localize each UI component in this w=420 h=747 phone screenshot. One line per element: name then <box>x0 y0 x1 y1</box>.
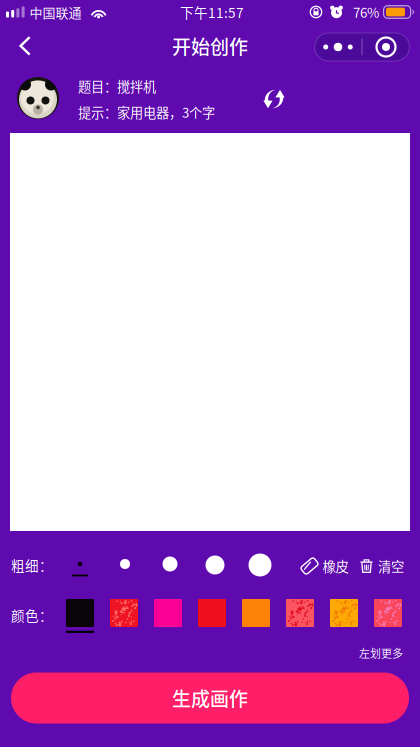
button[interactable]: 生成画作 <box>11 672 409 723</box>
staticText: 粗细： <box>11 555 53 575</box>
staticText: 清空 <box>378 556 404 576</box>
button[interactable]: 清空 <box>359 550 404 582</box>
staticText: 颜色： <box>11 605 53 625</box>
staticText: 左划更多 <box>359 645 403 661</box>
button[interactable]: 换一题 <box>252 77 296 121</box>
staticText: 题目：搅拌机 <box>78 76 156 95</box>
staticText: 开始创作 <box>172 32 248 60</box>
button[interactable]: 画笔颜色 <box>63 596 97 636</box>
button[interactable]: 画笔颜色 <box>151 596 185 636</box>
button[interactable]: 笔刷粗细 <box>152 547 188 581</box>
button[interactable]: 笔刷粗细 <box>197 548 233 582</box>
staticText: 生成画作 <box>172 684 248 712</box>
staticText: 下午11:57 <box>180 2 244 22</box>
button[interactable]: 笔刷粗细 <box>242 548 278 582</box>
button[interactable]: 画笔颜色 <box>239 596 273 636</box>
button[interactable]: 橡皮 <box>300 550 350 582</box>
button[interactable]: 画笔颜色 <box>371 596 405 636</box>
button[interactable]: 画笔颜色 <box>283 596 317 636</box>
staticText: 橡皮 <box>322 556 348 576</box>
button[interactable]: 画笔颜色 <box>327 596 361 636</box>
button[interactable]: 笔刷粗细 <box>62 547 98 581</box>
button[interactable]: 画笔颜色 <box>195 596 229 636</box>
button[interactable]: 更多功能 <box>314 33 409 61</box>
button[interactable]: 返回 <box>4 25 46 67</box>
staticText: 中国联通 <box>30 3 82 21</box>
button[interactable]: 画笔颜色 <box>107 596 141 636</box>
staticText: 76% <box>353 2 379 22</box>
button[interactable]: 笔刷粗细 <box>107 547 143 581</box>
staticText: 提示：家用电器，3个字 <box>78 102 215 122</box>
